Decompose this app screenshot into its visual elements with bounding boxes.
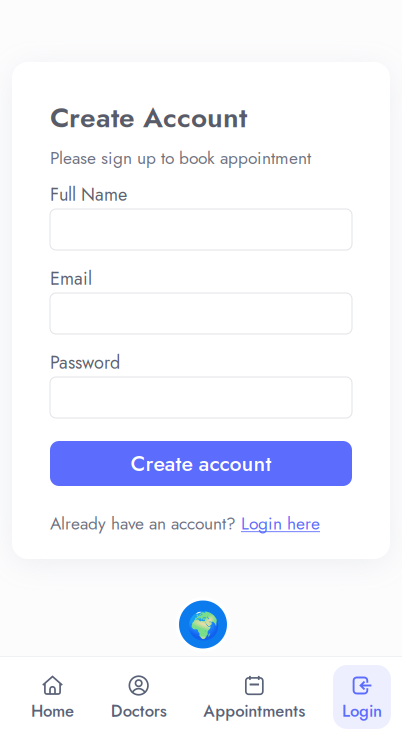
staticText: 🌍 (186, 610, 219, 642)
staticText: Home (31, 699, 74, 723)
staticText: Login here (241, 511, 320, 536)
staticText: Login (342, 699, 382, 723)
staticText: Full Name (50, 181, 127, 207)
button[interactable]: Language (171, 597, 230, 652)
staticText: Create account (130, 448, 271, 479)
button[interactable]: Home (22, 665, 83, 729)
button[interactable]: Email (50, 293, 352, 334)
staticText: Already have an account? (50, 511, 241, 536)
button[interactable]: Login (333, 665, 391, 729)
staticText: Email (50, 265, 92, 291)
staticText: Please sign up to book appointment (50, 145, 311, 170)
staticText: Appointments (203, 699, 305, 723)
button[interactable]: Create account (50, 441, 352, 486)
button[interactable]: Login here (241, 511, 320, 536)
button[interactable]: Appointments (194, 665, 314, 729)
button[interactable]: Doctors (102, 665, 176, 729)
button[interactable]: Full Name (50, 209, 352, 250)
staticText: Password (50, 349, 120, 375)
button[interactable]: Password (50, 377, 352, 418)
staticText: Doctors (111, 699, 167, 723)
staticText: Create Account (50, 97, 247, 138)
